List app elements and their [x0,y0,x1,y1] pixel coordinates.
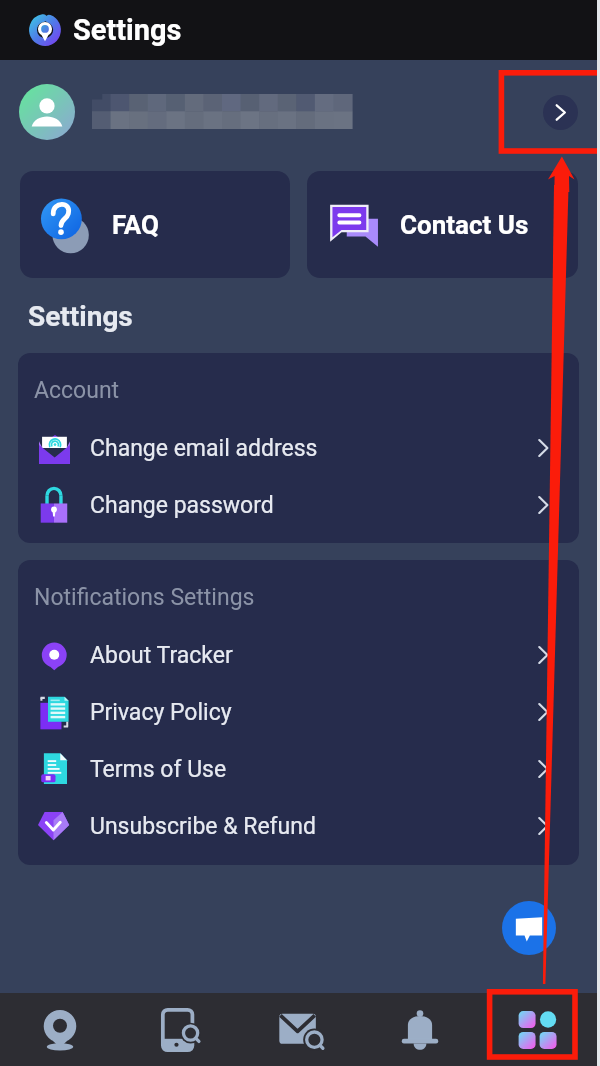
button[interactable]: Privacy Policy [18,686,579,738]
button[interactable]: About Tracker [18,629,579,681]
button[interactable]: Open profile [537,89,583,135]
staticText: Account [34,377,120,404]
button[interactable]: Contact Us [307,171,578,278]
button[interactable]: Notifications [360,993,480,1066]
button[interactable]: Map [0,993,120,1066]
button[interactable]: Device search [120,993,240,1066]
staticText: FAQ [112,210,160,240]
staticText: Notifications Settings [34,584,255,611]
staticText: Settings [73,13,182,47]
button[interactable]: Terms of Use [18,743,579,795]
staticText: Privacy Policy [90,699,232,726]
button[interactable]: Unsubscribe & Refund [18,800,579,852]
staticText: Terms of Use [90,756,227,783]
staticText: Contact Us [400,210,529,240]
button[interactable]: Change email address [18,422,579,474]
staticText: Change password [90,492,274,519]
button[interactable]: More [480,993,600,1066]
button[interactable]: Change password [18,479,579,531]
button[interactable]: Mail search [240,993,360,1066]
staticText: Unsubscribe & Refund [90,813,316,840]
button[interactable]: FAQ [20,171,290,278]
button[interactable]: Chat support [502,901,556,955]
staticText: Settings [28,300,133,333]
staticText: About Tracker [90,642,233,669]
staticText: Change email address [90,435,318,462]
button[interactable]: Open profile [0,60,600,164]
